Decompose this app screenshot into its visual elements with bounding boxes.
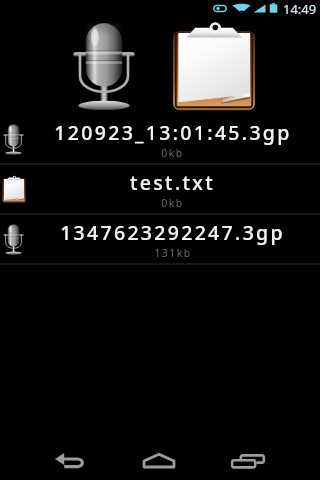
button[interactable]: Home <box>115 442 203 480</box>
button[interactable]: Recent apps <box>204 442 292 480</box>
button[interactable]: Back <box>27 442 115 480</box>
staticText: 131kb <box>154 246 192 260</box>
staticText: 1347623292247.3gp <box>60 219 285 246</box>
staticText: 14:49 <box>283 0 317 16</box>
button[interactable]: 1347623292247.3gp <box>0 215 320 263</box>
button[interactable]: test.txt <box>0 165 320 213</box>
staticText: 0kb <box>161 146 184 160</box>
button[interactable]: 120923_13:01:45.3gp <box>0 115 320 163</box>
button[interactable]: Record audio <box>72 22 136 111</box>
button[interactable]: New text note <box>171 20 257 112</box>
staticText: 0kb <box>161 196 184 210</box>
staticText: test.txt <box>130 169 215 196</box>
staticText: 120923_13:01:45.3gp <box>54 119 292 146</box>
